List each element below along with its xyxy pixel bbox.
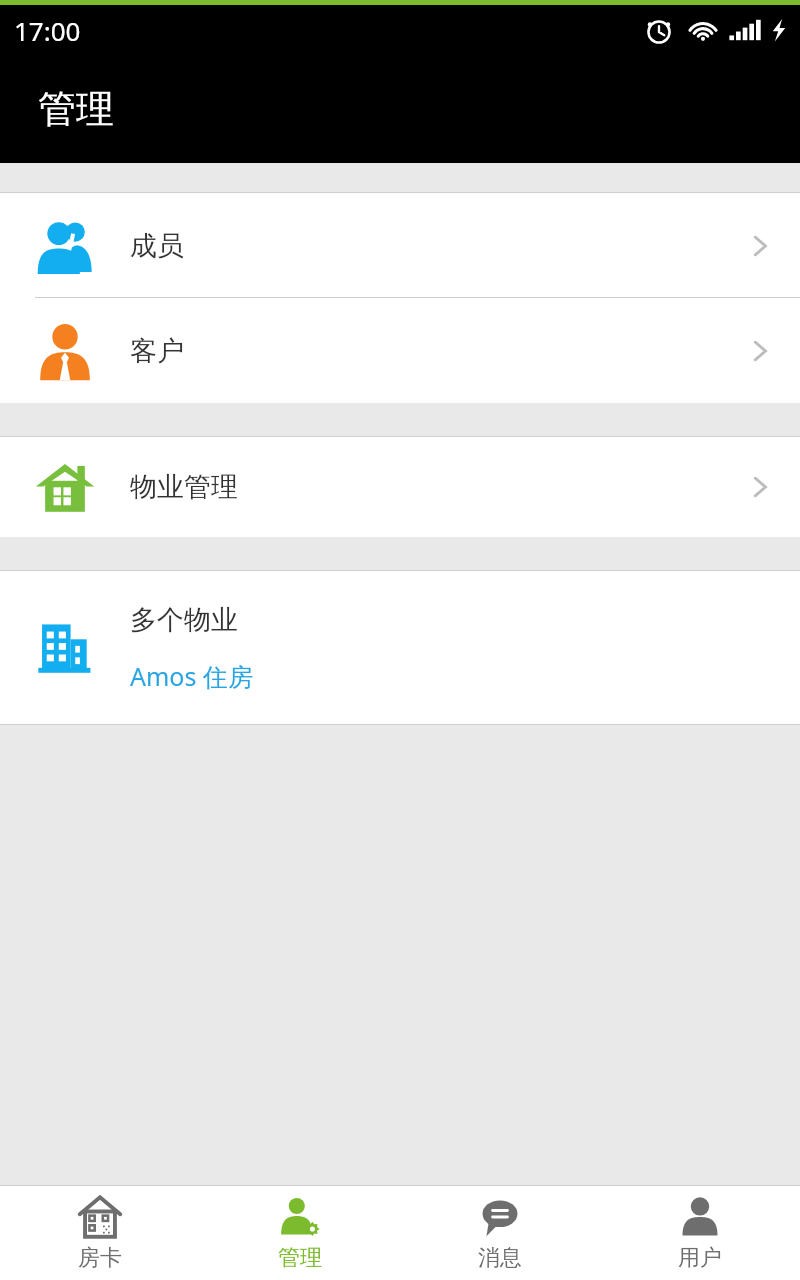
staticText: 成员 [130,229,184,263]
staticText: 管理 [38,85,114,133]
staticText: 客户 [130,334,184,368]
staticText: 房卡 [78,1244,122,1272]
staticText: 17:00 [14,13,81,48]
staticText: 物业管理 [130,470,238,504]
staticText: 消息 [478,1244,522,1272]
button[interactable]: 房卡 [0,1186,200,1280]
button[interactable]: 消息 [400,1186,600,1280]
button[interactable]: 物业管理 [0,437,800,537]
staticText: 管理 [278,1244,322,1272]
button[interactable]: 用户 [600,1186,800,1280]
staticText: Amos 住房 [130,659,253,693]
button[interactable]: 多个物业 [0,571,800,725]
button[interactable]: 管理 [200,1186,400,1280]
button[interactable]: 成员 [0,193,800,298]
staticText: 多个物业 [130,603,238,637]
staticText: 用户 [678,1244,722,1272]
button[interactable]: 客户 [0,298,800,403]
